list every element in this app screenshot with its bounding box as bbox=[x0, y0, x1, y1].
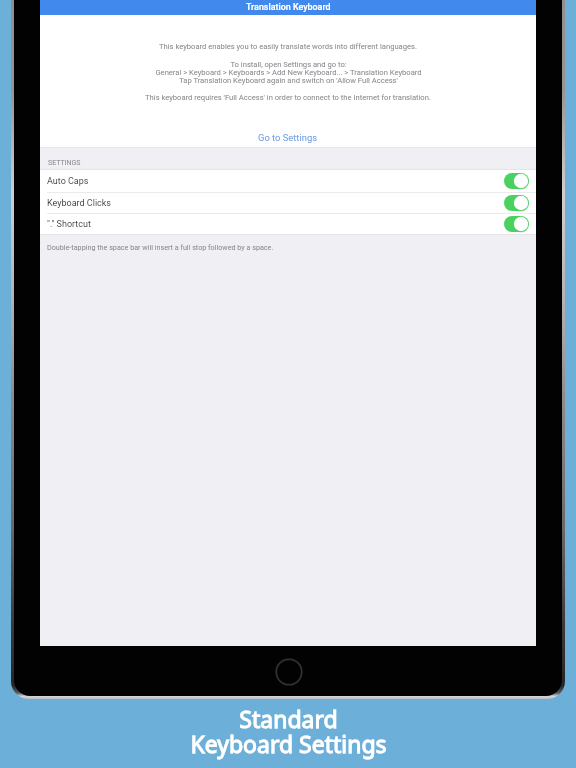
staticText: General > Keyboard > Keyboards > Add New… bbox=[155, 68, 422, 77]
staticText: This keyboard requires 'Full Access' in … bbox=[145, 93, 431, 102]
staticText: Double-tapping the space bar will insert… bbox=[47, 243, 274, 251]
button[interactable]: Home bbox=[275, 658, 303, 686]
button[interactable]: Keyboard Clicks bbox=[40, 192, 536, 214]
staticText: Standard bbox=[239, 703, 338, 734]
staticText: Tap Translation Keyboard again and switc… bbox=[179, 76, 398, 85]
button[interactable]: Auto Caps bbox=[40, 170, 536, 192]
button[interactable]: Toggle on bbox=[504, 216, 529, 232]
staticText: Auto Caps bbox=[47, 176, 89, 187]
staticText: "." Shortcut bbox=[47, 219, 91, 230]
staticText: Go to Settings bbox=[258, 132, 318, 143]
button[interactable]: Go to Settings bbox=[248, 129, 328, 146]
staticText: To install, open Settings and go to: bbox=[230, 60, 347, 69]
staticText: SETTINGS bbox=[48, 159, 81, 167]
button[interactable]: Toggle on bbox=[504, 173, 529, 189]
button[interactable]: "." Shortcut bbox=[40, 213, 536, 235]
staticText: This keyboard enables you to easily tran… bbox=[159, 42, 417, 51]
button[interactable]: Toggle on bbox=[504, 195, 529, 211]
staticText: Translation Keyboard bbox=[246, 2, 331, 12]
staticText: Keyboard Settings bbox=[190, 728, 387, 759]
staticText: Keyboard Clicks bbox=[47, 198, 112, 209]
